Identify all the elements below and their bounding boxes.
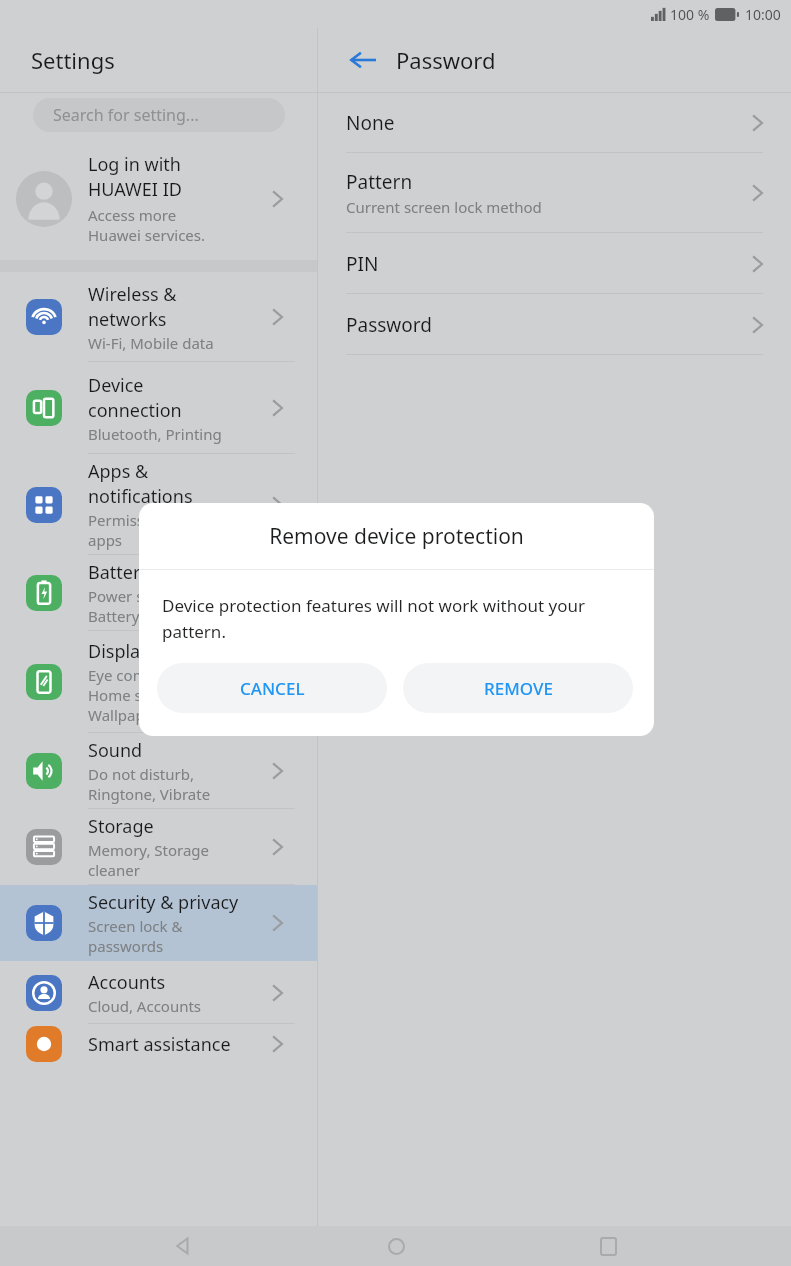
staticText: 10:00 xyxy=(745,5,781,24)
staticText: CANCEL xyxy=(240,677,305,700)
staticText: Ringtone, Vibrate xyxy=(88,784,211,804)
staticText: connection xyxy=(88,398,182,423)
staticText: apps xyxy=(88,530,123,550)
staticText: Device protection features will not work… xyxy=(162,594,628,643)
staticText: Smart assistance xyxy=(88,1032,231,1057)
staticText: 100 % xyxy=(670,5,710,24)
button[interactable]: Back xyxy=(153,1226,213,1266)
staticText: Current screen lock method xyxy=(346,197,542,217)
staticText: Wireless & xyxy=(88,282,177,307)
button[interactable]: Password xyxy=(318,294,791,355)
button[interactable]: Wireless & xyxy=(0,272,317,362)
staticText: Search for setting... xyxy=(53,104,199,126)
button[interactable]: Security & privacy xyxy=(0,885,317,961)
staticText: Remove device protection xyxy=(269,522,524,551)
button[interactable]: Search for setting... xyxy=(33,98,285,132)
button[interactable]: Home xyxy=(366,1226,426,1266)
staticText: PIN xyxy=(346,251,379,277)
staticText: Pattern xyxy=(346,169,413,195)
staticText: Sound xyxy=(88,738,143,763)
staticText: Password xyxy=(396,45,496,75)
staticText: Display xyxy=(88,639,150,664)
button[interactable]: REMOVE xyxy=(403,663,633,713)
staticText: Huawei services. xyxy=(88,225,206,245)
button[interactable]: Accounts xyxy=(0,961,317,1024)
staticText: REMOVE xyxy=(484,677,553,700)
staticText: Settings xyxy=(31,45,115,75)
staticText: Battery usage xyxy=(88,606,186,626)
button[interactable]: None xyxy=(318,93,791,153)
staticText: Eye comfort, xyxy=(88,665,177,685)
button[interactable]: Sound xyxy=(0,733,317,809)
staticText: Permissions, Default xyxy=(88,510,233,530)
button[interactable]: Smart assistance xyxy=(0,1024,317,1064)
staticText: Home screen style, xyxy=(88,685,222,705)
staticText: Accounts xyxy=(88,970,166,995)
button[interactable]: Back xyxy=(342,39,384,81)
button[interactable]: CANCEL xyxy=(157,663,387,713)
staticText: Access more xyxy=(88,205,177,225)
button[interactable]: Storage xyxy=(0,809,317,885)
staticText: Device xyxy=(88,373,144,398)
button[interactable]: Recents xyxy=(578,1226,638,1266)
button[interactable]: PIN xyxy=(318,233,791,294)
button[interactable]: Log in with xyxy=(0,137,317,260)
staticText: Power saving, xyxy=(88,586,186,606)
staticText: Wallpaper xyxy=(88,705,160,725)
button[interactable]: Apps & xyxy=(0,454,317,555)
staticText: Bluetooth, Printing xyxy=(88,424,222,444)
staticText: Log in with xyxy=(88,152,181,177)
button[interactable]: Battery xyxy=(0,555,317,631)
staticText: Security & privacy xyxy=(88,890,239,915)
staticText: HUAWEI ID xyxy=(88,177,182,202)
staticText: cleaner xyxy=(88,860,140,880)
staticText: None xyxy=(346,110,395,136)
staticText: Battery xyxy=(88,560,150,585)
staticText: Memory, Storage xyxy=(88,840,210,860)
staticText: Password xyxy=(346,312,432,338)
staticText: notifications xyxy=(88,484,193,509)
staticText: passwords xyxy=(88,936,164,956)
staticText: Apps & xyxy=(88,459,149,484)
staticText: Cloud, Accounts xyxy=(88,996,202,1016)
staticText: Do not disturb, xyxy=(88,764,194,784)
button[interactable]: Pattern xyxy=(318,153,791,233)
staticText: Storage xyxy=(88,814,154,839)
staticText: networks xyxy=(88,307,167,332)
staticText: Wi-Fi, Mobile data xyxy=(88,333,214,353)
staticText: Screen lock & xyxy=(88,916,183,936)
button[interactable]: Device xyxy=(0,362,317,454)
button[interactable]: Display xyxy=(0,631,317,733)
